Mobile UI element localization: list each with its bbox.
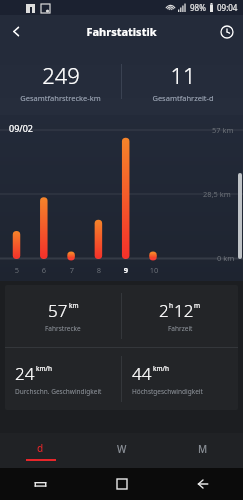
staticText: 09:04 — [217, 2, 238, 13]
staticText: Durchschn. Geschwindigkeit — [15, 387, 102, 396]
staticText: 0 km — [217, 253, 235, 263]
staticText: d — [37, 441, 44, 455]
staticText: W — [117, 442, 127, 456]
staticText: 11 — [170, 60, 196, 90]
staticText: 10 — [148, 265, 160, 275]
staticText: Fahrstatistik — [86, 24, 157, 39]
staticText: Höchstgeschwindigkeit — [132, 387, 203, 396]
button[interactable]: 249 — [0, 48, 121, 115]
staticText: h — [169, 301, 174, 310]
staticText: Fahrzeit — [168, 324, 193, 333]
button[interactable]: 2 — [132, 285, 228, 347]
button[interactable]: 24 — [15, 348, 111, 410]
staticText: 6 — [38, 265, 50, 275]
staticText: Fahrstrecke — [45, 324, 81, 333]
staticText: M — [198, 442, 208, 456]
staticText: 5 — [11, 265, 23, 275]
staticText: 57 — [48, 299, 68, 322]
staticText: 2 — [159, 299, 169, 322]
staticText: 7 — [66, 265, 78, 275]
button[interactable]: History — [210, 15, 243, 48]
staticText: km — [69, 301, 79, 310]
staticText: 24 — [15, 362, 35, 385]
staticText: km/h — [153, 364, 169, 373]
button[interactable]: M — [162, 433, 243, 468]
button[interactable]: d — [0, 433, 81, 468]
staticText: Gesamtfahrzeit-d — [152, 93, 214, 103]
staticText: 8 — [93, 265, 105, 275]
staticText: 28,5 km — [203, 189, 231, 199]
staticText: 9 — [120, 265, 132, 275]
staticText: 98% — [190, 2, 206, 13]
button[interactable]: Back — [0, 15, 33, 48]
button[interactable]: Home — [81, 468, 162, 500]
button[interactable]: Recents — [0, 468, 81, 500]
button[interactable]: W — [81, 433, 162, 468]
staticText: m — [194, 301, 201, 310]
staticText: km/h — [36, 364, 52, 373]
button[interactable]: Back — [162, 468, 243, 500]
button[interactable]: 44 — [132, 348, 228, 410]
staticText: 249 — [42, 60, 80, 90]
button[interactable]: 11 — [122, 48, 243, 115]
button[interactable]: 57 — [15, 285, 111, 347]
staticText: Gesamtfahrstrecke-km — [20, 93, 101, 103]
staticText: 12 — [174, 299, 194, 322]
staticText: 09/02 — [9, 122, 33, 134]
staticText: 44 — [132, 362, 152, 385]
staticText: 57 km — [212, 125, 234, 135]
